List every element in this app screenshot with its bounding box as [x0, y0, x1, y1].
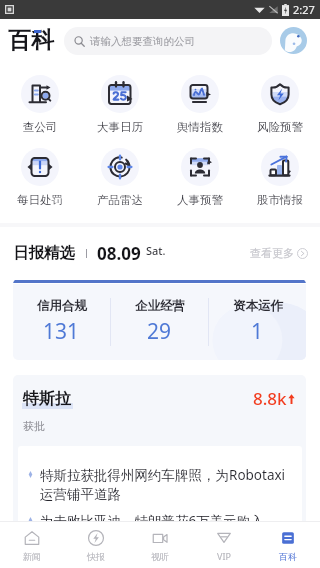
button[interactable]: 请输入想要查询的公司: [64, 27, 272, 55]
button[interactable]: 股市情报: [240, 148, 320, 207]
staticText: 大事日历: [97, 120, 143, 134]
staticText: 快报: [87, 551, 105, 562]
button[interactable]: 人事预警: [160, 148, 240, 207]
button[interactable]: 特斯拉: [13, 375, 306, 560]
staticText: 人事预警: [177, 193, 223, 207]
staticText: 29: [147, 317, 172, 346]
button[interactable]: 每日处罚: [0, 148, 80, 207]
staticText: 信用合规: [37, 298, 87, 314]
button[interactable]: 大事日历: [80, 75, 160, 134]
staticText: 131: [43, 317, 80, 346]
staticText: 特斯拉获批得州网约车牌照，为Robotaxi运营铺平道路: [40, 466, 298, 503]
button[interactable]: 风险预警: [240, 75, 320, 134]
staticText: 百科: [8, 26, 54, 55]
staticText: 风险预警: [257, 120, 303, 134]
staticText: 获批: [23, 419, 45, 433]
staticText: 查看更多: [250, 246, 294, 260]
staticText: VIP: [217, 550, 231, 562]
button[interactable]: 产品雷达: [80, 148, 160, 207]
button[interactable]: 快报: [64, 529, 128, 562]
staticText: 2:27: [293, 2, 315, 17]
staticText: 新闻: [23, 551, 41, 562]
button[interactable]: 舆情指数: [160, 75, 240, 134]
button[interactable]: 新闻: [0, 529, 64, 562]
button[interactable]: 视听: [128, 529, 192, 562]
staticText: 08.09: [97, 242, 141, 265]
staticText: 视听: [151, 551, 169, 562]
button[interactable]: 查公司: [0, 75, 80, 134]
staticText: 1: [251, 317, 264, 346]
staticText: 企业经营: [135, 298, 185, 314]
button[interactable]: Profile: [280, 27, 307, 54]
staticText: 特斯拉: [23, 389, 71, 409]
staticText: 百科: [279, 551, 297, 562]
staticText: 产品雷达: [97, 193, 143, 207]
staticText: 查公司: [23, 120, 58, 134]
button[interactable]: 百科: [256, 529, 320, 562]
staticText: 舆情指数: [177, 120, 223, 134]
staticText: 请输入想要查询的公司: [90, 35, 195, 48]
staticText: 每日处罚: [17, 193, 63, 207]
staticText: 日报精选: [13, 243, 75, 263]
button[interactable]: 信用合规: [13, 279, 306, 360]
staticText: 8.8k: [253, 387, 287, 410]
staticText: 为击败比亚迪，特朗普花6万美元购入...: [40, 512, 275, 530]
staticText: Sat.: [146, 243, 166, 258]
staticText: 资本运作: [233, 298, 283, 314]
button[interactable]: 查看更多: [250, 246, 308, 260]
button[interactable]: VIP: [192, 528, 256, 562]
staticText: 股市情报: [257, 193, 303, 207]
